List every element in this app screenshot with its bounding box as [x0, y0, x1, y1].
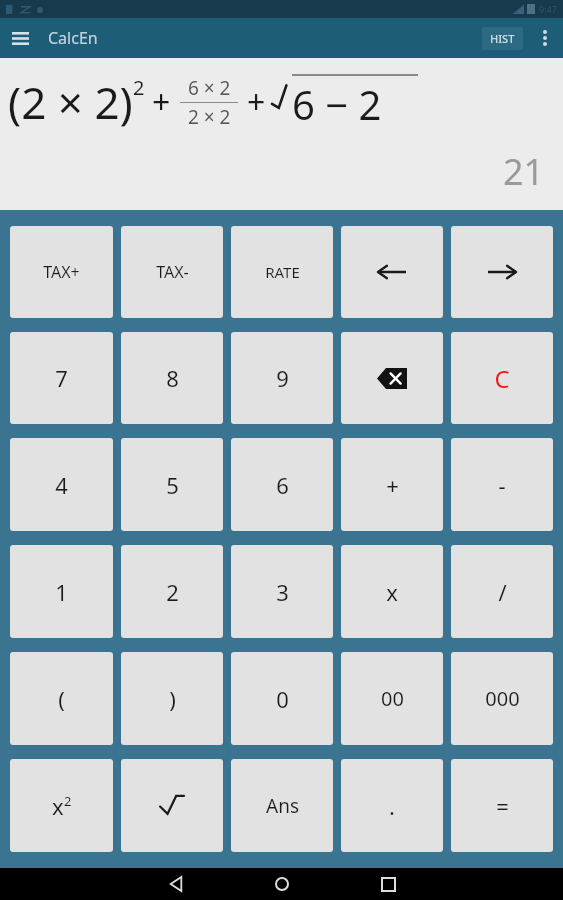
staticText: 2: [166, 577, 179, 607]
button[interactable]: 3: [231, 545, 333, 638]
button[interactable]: Backspace: [341, 332, 443, 424]
button[interactable]: Home: [252, 868, 312, 900]
button[interactable]: 000: [451, 652, 553, 745]
staticText: 5: [166, 470, 179, 500]
staticText: 9: [276, 363, 289, 393]
button[interactable]: 2: [121, 545, 223, 638]
button[interactable]: Square root: [121, 759, 223, 852]
button[interactable]: 6: [231, 438, 333, 531]
button[interactable]: 1: [10, 545, 113, 638]
staticText: 1: [55, 577, 68, 607]
staticText: TAX+: [43, 261, 80, 283]
button[interactable]: Move left: [341, 226, 443, 318]
staticText: /: [498, 577, 507, 607]
staticText: +: [152, 80, 171, 124]
button[interactable]: Move right: [451, 226, 553, 318]
staticText: 6 − 2: [292, 77, 382, 131]
staticText: C: [494, 362, 510, 395]
staticText: ): [169, 684, 176, 714]
button[interactable]: +: [341, 438, 443, 531]
button[interactable]: /: [451, 545, 553, 638]
button[interactable]: 4: [10, 438, 113, 531]
staticText: 2 × 2: [188, 104, 231, 130]
button[interactable]: Menu: [0, 18, 40, 58]
button[interactable]: (: [10, 652, 113, 745]
staticText: HIST: [490, 31, 515, 46]
button[interactable]: .: [341, 759, 443, 852]
button[interactable]: -: [451, 438, 553, 531]
staticText: CalcEn: [48, 27, 98, 49]
button[interactable]: RATE: [231, 226, 333, 318]
staticText: x: [52, 791, 64, 821]
staticText: (2 × 2): [8, 72, 133, 132]
staticText: 21: [503, 147, 545, 196]
staticText: 7: [55, 363, 68, 393]
button[interactable]: 7: [10, 332, 113, 424]
button[interactable]: C: [451, 332, 553, 424]
staticText: 6 × 2: [188, 75, 231, 101]
staticText: 2: [133, 74, 145, 101]
button[interactable]: TAX+: [10, 226, 113, 318]
staticText: Ans: [266, 793, 299, 819]
button[interactable]: ): [121, 652, 223, 745]
button[interactable]: 9: [231, 332, 333, 424]
button[interactable]: =: [451, 759, 553, 852]
staticText: .: [389, 791, 395, 821]
button[interactable]: Back: [146, 868, 206, 900]
staticText: 000: [485, 685, 520, 712]
button[interactable]: 0: [231, 652, 333, 745]
button[interactable]: Square: [10, 759, 113, 852]
staticText: 8: [166, 363, 179, 393]
button[interactable]: Ans: [231, 759, 333, 852]
staticText: +: [247, 80, 266, 124]
staticText: TAX-: [156, 261, 189, 283]
staticText: 3: [276, 577, 289, 607]
staticText: +: [386, 470, 399, 500]
staticText: 4: [55, 470, 68, 500]
button[interactable]: TAX-: [121, 226, 223, 318]
staticText: -: [498, 470, 506, 500]
button[interactable]: 8: [121, 332, 223, 424]
button[interactable]: 5: [121, 438, 223, 531]
staticText: 6: [276, 470, 289, 500]
staticText: (: [58, 684, 65, 714]
button[interactable]: 00: [341, 652, 443, 745]
staticText: x: [386, 577, 398, 607]
staticText: 9:47: [539, 3, 557, 15]
button[interactable]: Recent apps: [358, 868, 418, 900]
button[interactable]: More options: [527, 20, 563, 56]
button[interactable]: HIST: [482, 27, 523, 50]
button[interactable]: x: [341, 545, 443, 638]
staticText: 00: [381, 685, 404, 712]
staticText: 2: [64, 792, 72, 810]
staticText: 0: [276, 684, 289, 714]
staticText: =: [496, 791, 509, 821]
staticText: RATE: [265, 262, 300, 282]
